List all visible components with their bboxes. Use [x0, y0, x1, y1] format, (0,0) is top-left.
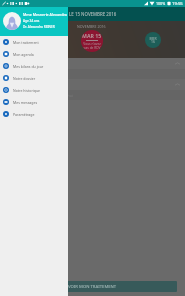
staticText: 100%: [156, 1, 166, 6]
staticText: Mes messages: [13, 100, 38, 105]
staticText: Mon agenda: [13, 52, 34, 57]
staticText: MAR 15: [82, 32, 102, 39]
staticText: MER 16: [149, 36, 157, 44]
staticText: Dr. Alexandra REINER: [23, 25, 55, 29]
staticText: Vous n'avez pas de bilan aujourd'hui: [4, 72, 64, 77]
staticText: MES BILANS DU JOUR: [4, 61, 175, 66]
button[interactable]: MES BILANS DU JOUR: [0, 58, 185, 69]
button[interactable]: Mes bilans du jour: [0, 60, 68, 72]
staticText: 19:55: [172, 1, 183, 7]
staticText: Mes bilans du jour: [13, 64, 44, 69]
button[interactable]: Paramétrage: [0, 108, 68, 120]
button[interactable]: Open navigation drawer: [2, 9, 13, 20]
staticText: LE 15 NOVEMBRE 2016: [69, 11, 117, 17]
staticText: Mon traitement: [13, 40, 39, 45]
staticText: Vous n'avez pas de RDV: [83, 42, 101, 50]
staticText: Age 34 ans: [23, 19, 40, 23]
staticText: NOVEMBRE 2016: [77, 24, 106, 29]
button[interactable]: Mes messages: [0, 96, 68, 108]
staticText: VOIR MON TRAITEMENT: [68, 284, 117, 290]
button[interactable]: Notre dossier: [0, 72, 68, 84]
button[interactable]: MAR 15: [81, 30, 103, 52]
staticText: Mme Mesnerie Alexandra: [23, 12, 67, 17]
button[interactable]: Mon agenda: [0, 48, 68, 60]
button[interactable]: MON TRAITEMENT: [0, 79, 185, 90]
staticText: Paramétrage: [13, 112, 35, 117]
button[interactable]: Mon traitement: [0, 36, 68, 48]
button[interactable]: Notre historique: [0, 84, 68, 96]
button[interactable]: VOIR MON TRAITEMENT: [8, 281, 177, 292]
staticText: Vous n'avez pas de traitement aujourd'hu…: [4, 93, 73, 98]
staticText: Notre historique: [13, 88, 41, 93]
button[interactable]: MER 16: [145, 32, 161, 48]
staticText: Notre dossier: [13, 76, 36, 81]
staticText: MON TRAITEMENT: [4, 82, 175, 87]
